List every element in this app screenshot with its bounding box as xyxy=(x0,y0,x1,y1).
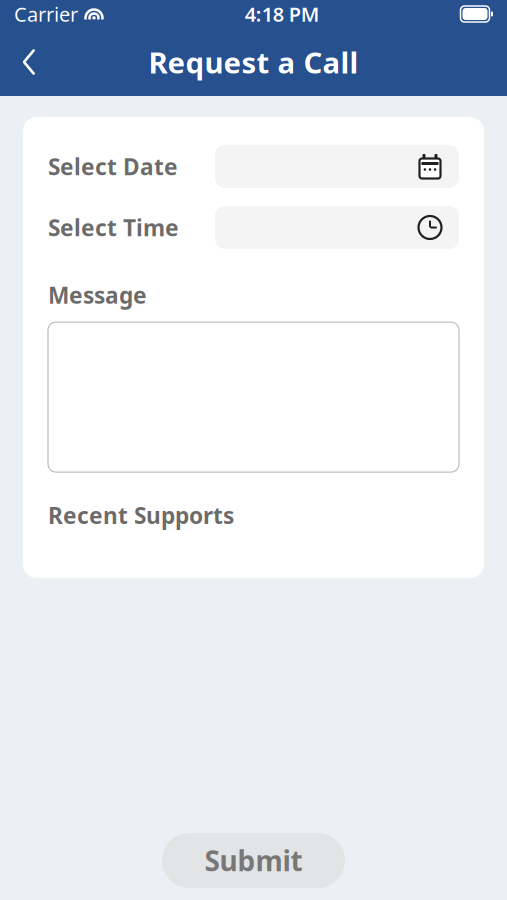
button[interactable]: Select Time xyxy=(215,206,459,249)
staticText: Select Time xyxy=(48,212,179,242)
staticText: Submit xyxy=(204,842,302,879)
staticText: Carrier xyxy=(14,1,78,27)
button[interactable]: Back xyxy=(4,37,54,87)
staticText: Request a Call xyxy=(148,42,358,81)
staticText: 4:18 PM xyxy=(245,1,320,27)
staticText: Recent Supports xyxy=(48,500,234,530)
button[interactable]: Select Date xyxy=(215,145,459,188)
button[interactable]: Submit xyxy=(162,833,345,888)
staticText: Select Date xyxy=(48,151,178,181)
staticText: Message xyxy=(48,280,147,310)
